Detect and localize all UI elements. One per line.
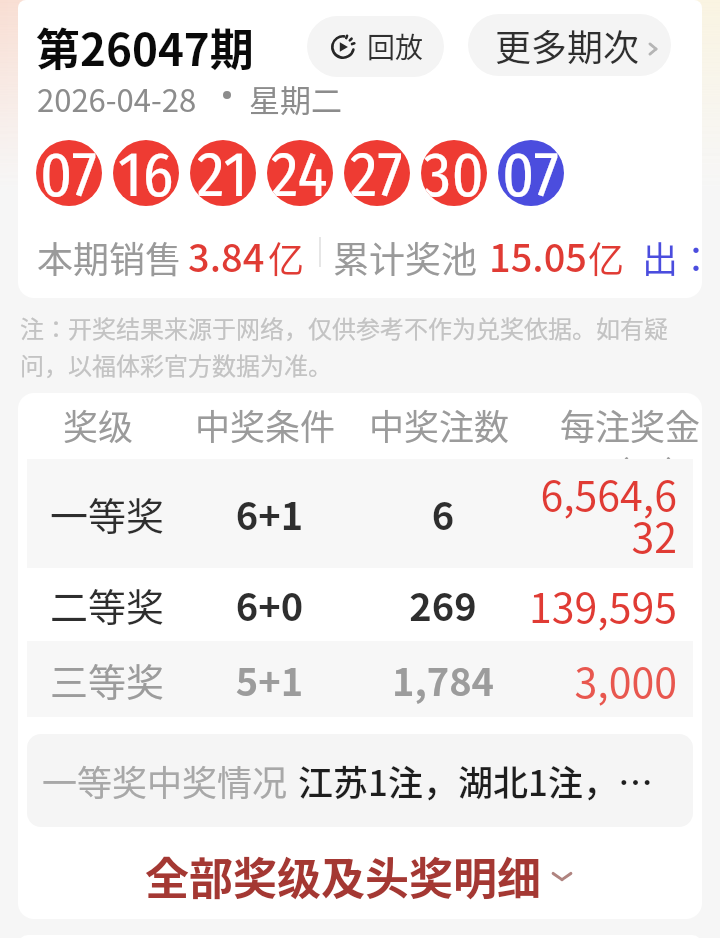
staticText: 27: [350, 140, 404, 204]
staticText: 出：: [642, 231, 702, 283]
staticText: 3.84: [188, 228, 265, 283]
staticText: 24: [271, 140, 329, 204]
staticText: 三等奖: [27, 652, 187, 707]
staticText: 星期二: [249, 76, 342, 121]
staticText: 3,000: [523, 650, 677, 709]
staticText: 江苏1注，湖北1注，…: [298, 755, 653, 806]
other: More periods: [642, 38, 664, 60]
button[interactable]: 更多期次: [468, 14, 671, 76]
staticText: 6,564,632: [523, 463, 677, 564]
staticText: 1,784: [352, 652, 534, 707]
staticText: 15.05: [489, 228, 587, 283]
staticText: 每注奖金（元）: [526, 399, 700, 498]
staticText: 07: [502, 140, 560, 204]
button[interactable]: Replay: [307, 16, 444, 77]
staticText: 更多期次: [495, 19, 640, 71]
staticText: 全部奖级及头奖明细: [145, 844, 541, 908]
staticText: 第26047期: [36, 15, 254, 79]
staticText: 30: [423, 140, 485, 204]
staticText: 6+1: [187, 486, 352, 541]
staticText: 二等奖: [27, 577, 187, 632]
staticText: 本期销售: [37, 231, 182, 283]
staticText: 奖级: [18, 399, 178, 450]
staticText: 5+1: [187, 652, 352, 707]
staticText: 21: [197, 140, 249, 204]
staticText: 注：开奖结果来源于网络，仅供参考不作为兑奖依据。如有疑问，以福体彩官方数据为准。: [20, 310, 700, 382]
staticText: 6: [352, 486, 534, 541]
staticText: 07: [40, 140, 98, 204]
staticText: 一等奖: [27, 486, 187, 541]
staticText: 16: [118, 140, 174, 204]
staticText: 亿: [588, 231, 625, 283]
staticText: 6+0: [187, 577, 352, 632]
staticText: 269: [352, 577, 534, 632]
staticText: 中奖注数: [352, 399, 526, 450]
staticText: 亿: [268, 231, 305, 283]
staticText: 中奖条件: [178, 399, 352, 450]
button[interactable]: 一等奖中奖情况: [27, 734, 693, 827]
staticText: 139,595: [523, 575, 677, 634]
staticText: 一等奖中奖情况: [42, 755, 288, 806]
staticText: 累计奖池: [333, 231, 478, 283]
staticText: 回放: [367, 26, 424, 67]
staticText: 2026-04-28: [37, 76, 197, 121]
other: Replay: [331, 35, 355, 59]
button[interactable]: 全部奖级及头奖明细: [18, 833, 702, 919]
